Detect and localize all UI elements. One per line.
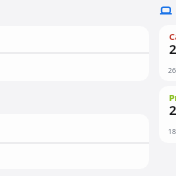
staticText: 18 l [168, 127, 176, 137]
staticText: Calories [169, 30, 176, 42]
button[interactable] [0, 26, 149, 81]
staticText: 2,1 [169, 40, 176, 58]
button[interactable] [0, 114, 149, 169]
button[interactable]: Cast to device [156, 0, 176, 20]
staticText: Protein [169, 91, 176, 103]
staticText: 21 [169, 101, 176, 119]
button[interactable]: Protein [159, 86, 176, 143]
button[interactable]: Calories [159, 25, 176, 81]
staticText: 26 l [168, 66, 176, 76]
